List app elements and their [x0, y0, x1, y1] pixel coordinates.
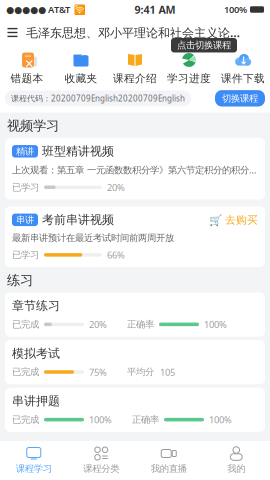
button[interactable]: 课程学习: [0, 446, 67, 474]
staticText: 模拟考试: [12, 346, 60, 361]
button[interactable]: 切换课程: [215, 90, 265, 107]
staticText: 我的直播: [151, 463, 187, 474]
staticText: 课程介绍: [113, 72, 157, 85]
staticText: ●●●●● AT&T: [6, 3, 70, 16]
button[interactable]: 我的直播: [135, 446, 202, 474]
staticText: 已完成: [12, 414, 39, 425]
staticText: 🛒 去购买: [209, 213, 258, 226]
staticText: 正确率: [127, 319, 154, 330]
button[interactable]: 我的: [202, 446, 270, 474]
staticText: 100%: [209, 413, 232, 426]
staticText: 9:41 AM: [134, 2, 175, 17]
staticText: 串讲: [16, 214, 34, 226]
staticText: 点击切换课程: [177, 39, 231, 51]
staticText: 收藏夹: [64, 72, 97, 85]
staticText: 20%: [107, 181, 125, 193]
button[interactable]: 收藏夹: [54, 52, 108, 85]
staticText: 75%: [89, 366, 107, 378]
button[interactable]: 章节练习: [0, 292, 270, 336]
staticText: 毛泽东思想、邓小平理论和社会主义论…: [26, 24, 240, 40]
button[interactable]: 课程分类: [67, 446, 135, 474]
button[interactable]: 课程介绍: [108, 52, 162, 85]
button[interactable]: 精讲: [0, 138, 270, 199]
staticText: 学习进度: [167, 72, 211, 85]
button[interactable]: 串讲押题: [0, 388, 270, 432]
staticText: 串讲押题: [12, 394, 60, 408]
button[interactable]: 菜单: [5, 25, 20, 40]
staticText: 课程分类: [83, 463, 119, 474]
staticText: 精讲: [16, 146, 34, 157]
staticText: 最新串讲预计在最近考试时间前两周开放: [12, 232, 174, 244]
staticText: 切换课程: [222, 93, 258, 104]
staticText: 已完成: [12, 366, 39, 378]
staticText: 班型精讲视频: [42, 144, 114, 159]
staticText: 20%: [89, 318, 107, 331]
staticText: 105: [160, 366, 175, 378]
button[interactable]: 学习进度: [162, 52, 216, 85]
staticText: 🛜: [70, 3, 86, 16]
button[interactable]: 模拟考试: [0, 340, 270, 384]
staticText: 考前串讲视频: [42, 212, 114, 227]
staticText: 正确率: [132, 414, 159, 425]
button[interactable]: ↓: [216, 52, 270, 85]
staticText: 已完成: [12, 319, 39, 330]
staticText: 课程学习: [16, 463, 52, 474]
staticText: 100%: [204, 318, 227, 331]
staticText: 平均分: [127, 366, 154, 378]
staticText: 练习: [7, 272, 33, 288]
staticText: 100%: [224, 3, 247, 16]
button[interactable]: ✕: [0, 52, 54, 85]
staticText: ✕: [24, 57, 34, 71]
staticText: ↓: [239, 54, 248, 66]
staticText: 已学习: [12, 181, 39, 193]
staticText: 上次观看：第五章 一元函数数积分学》第六节定积分的积分…: [12, 164, 256, 176]
staticText: 66%: [107, 249, 125, 261]
staticText: 错题本: [10, 72, 43, 85]
staticText: 100%: [89, 413, 112, 426]
staticText: 课程代码：20200709English20200709English: [11, 93, 185, 104]
staticText: 章节练习: [12, 298, 60, 313]
staticText: 视频学习: [7, 118, 59, 134]
button[interactable]: 串讲: [0, 206, 270, 267]
staticText: 我的: [227, 463, 245, 474]
staticText: 已学习: [12, 249, 39, 261]
staticText: 课件下载: [221, 72, 265, 85]
